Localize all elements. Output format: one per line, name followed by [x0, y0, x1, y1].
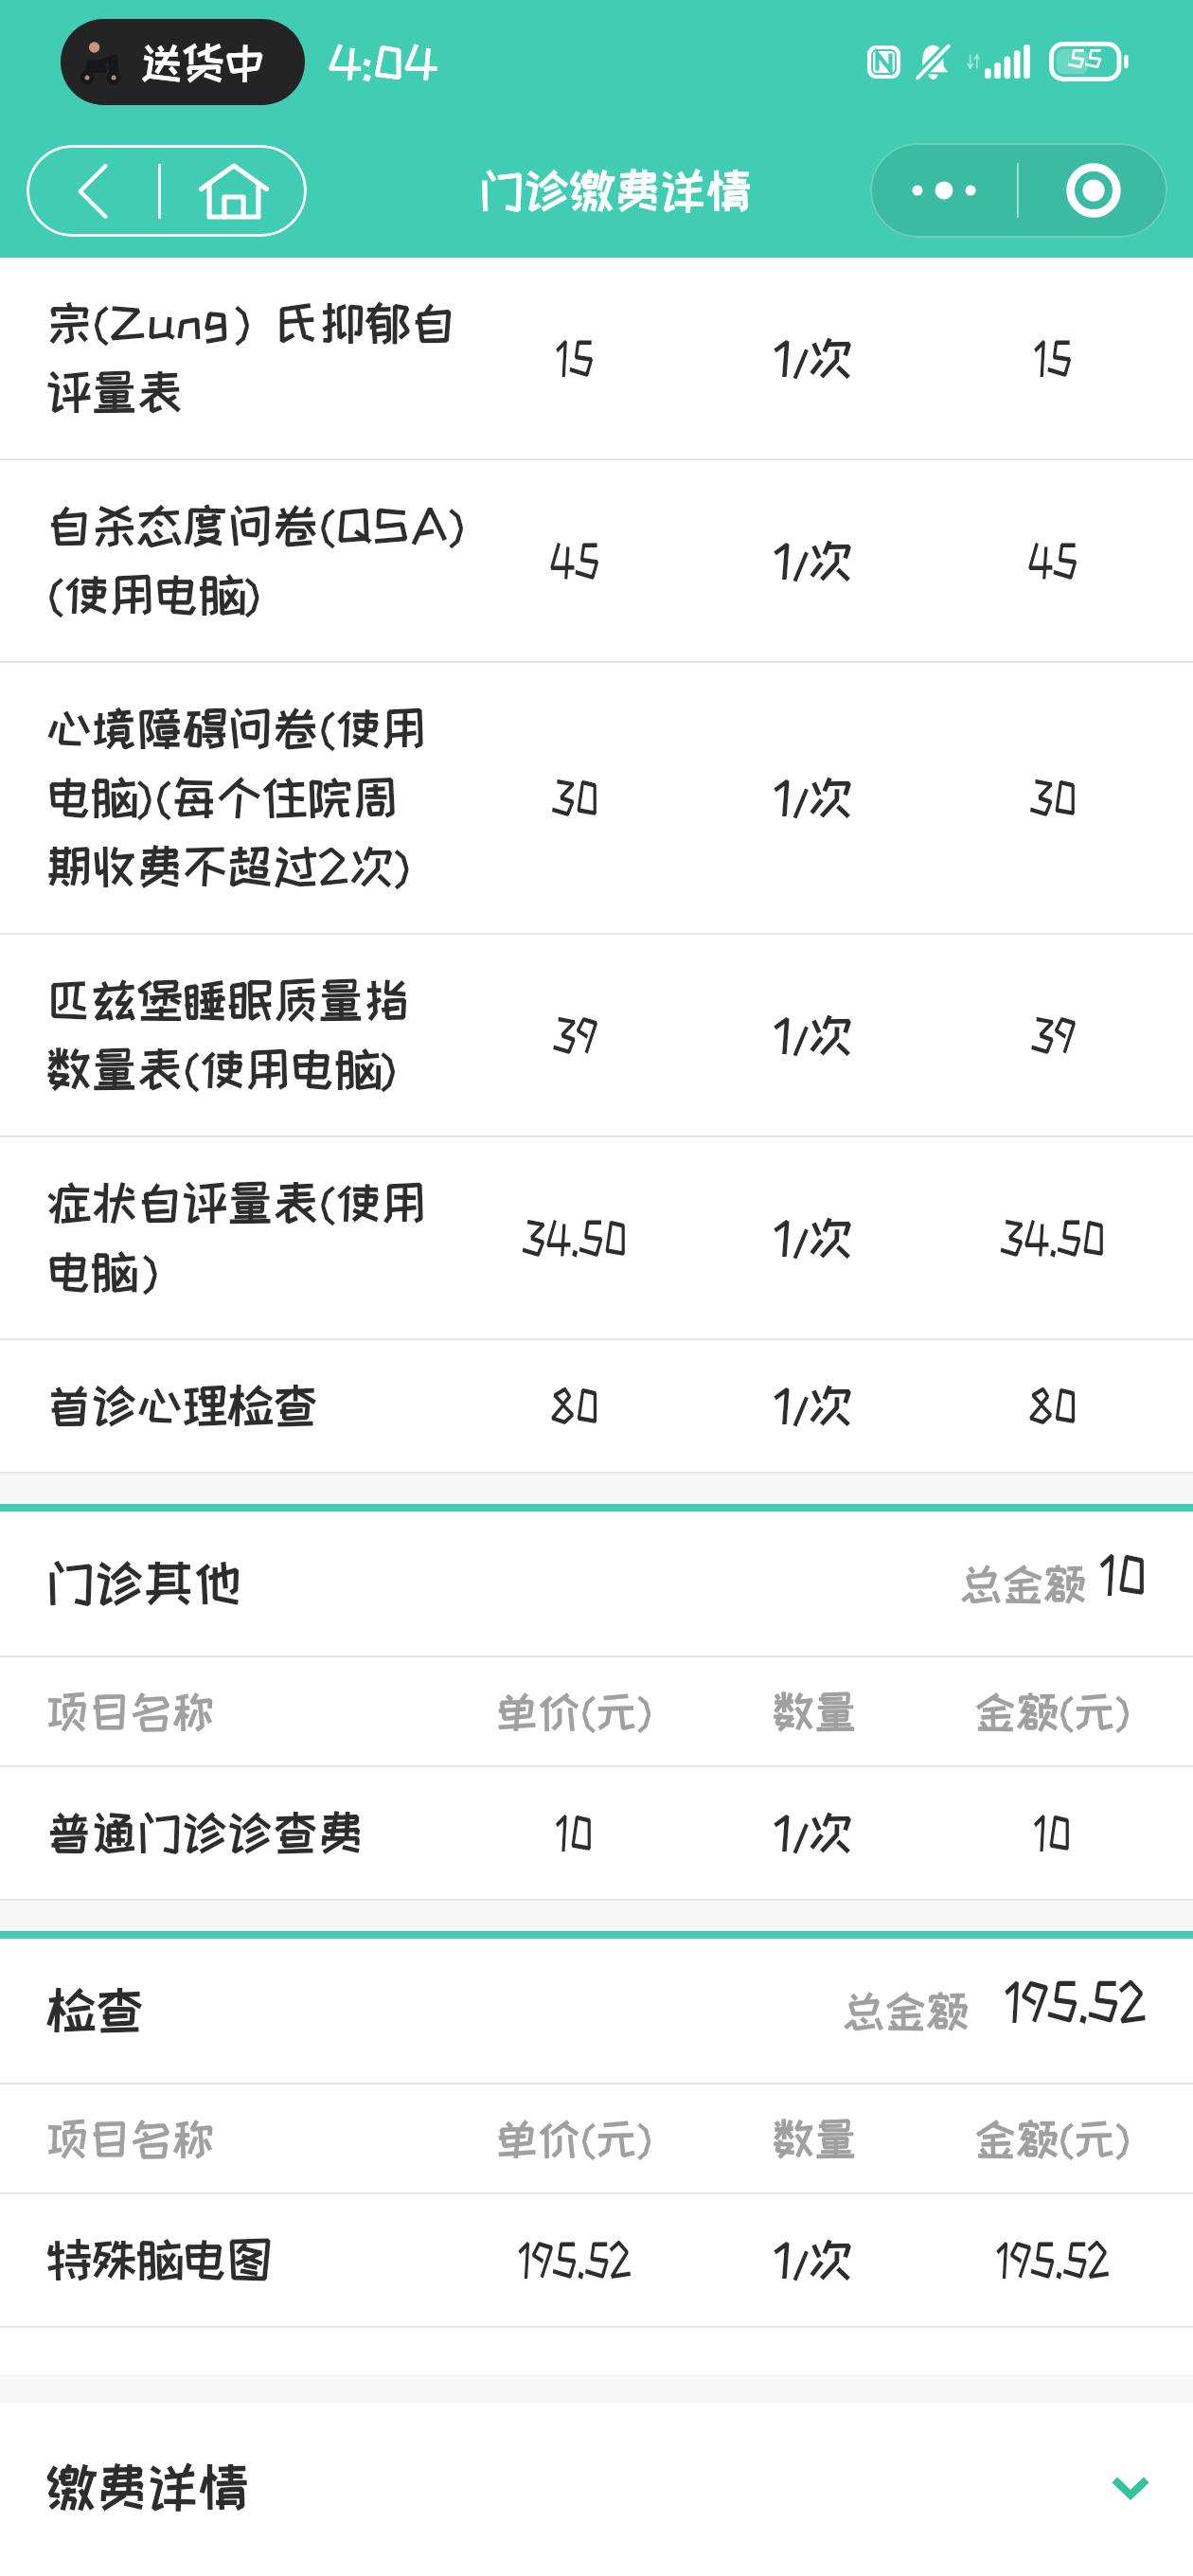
staticText: 30 [1030, 755, 1077, 824]
button[interactable]: 送货中 [61, 19, 305, 105]
staticText: 金额(元) [974, 1672, 1131, 1736]
button[interactable]: 宗(Zung）氏抑郁自 评量表 [0, 258, 1193, 458]
staticText: 1/次 [775, 1363, 854, 1432]
button[interactable]: 症状自评量表(使用 电脑） [0, 1137, 1193, 1338]
staticText: 总金额 [843, 1971, 969, 2035]
staticText: 1/次 [775, 1195, 854, 1264]
button[interactable]: 检查 [0, 1939, 1193, 2083]
staticText: 1/次 [775, 518, 854, 587]
staticText: 195.52 [519, 2217, 631, 2286]
staticText: 34.50 [1000, 1195, 1105, 1264]
button[interactable]: 首诊心理检查 [0, 1340, 1193, 1472]
staticText: 195.52 [1006, 1974, 1147, 2029]
button[interactable]: 心境障碍问卷(使用 电脑)(每个住院周 期收费不超过2次) [0, 663, 1193, 933]
staticText: 10 [1035, 1790, 1071, 1859]
staticText: 金额(元) [974, 2099, 1131, 2163]
staticText: 单价(元) [496, 1672, 653, 1736]
staticText: 10 [556, 1790, 593, 1859]
button[interactable]: Back [27, 145, 158, 237]
staticText: 39 [1031, 993, 1075, 1062]
staticText: 项目名称 [46, 1672, 214, 1736]
staticText: 宗(Zung）氏抑郁自 评量表 [46, 280, 456, 419]
staticText: 55 [1068, 45, 1102, 70]
staticText: 检查 [46, 1963, 145, 2039]
button[interactable]: 特殊脑电图 [0, 2194, 1193, 2326]
staticText: 匹兹堡睡眠质量指 数量表(使用电脑) [46, 957, 409, 1096]
button[interactable]: 自杀态度问卷(QSA) (使用电脑) [0, 460, 1193, 661]
staticText: 15 [1035, 315, 1072, 385]
staticText: 1/次 [775, 755, 854, 824]
staticText: 数量 [773, 1672, 857, 1736]
staticText: 心境障碍问卷(使用 电脑)(每个住院周 期收费不超过2次) [46, 686, 426, 893]
staticText: 门诊其他 [46, 1536, 242, 1612]
button[interactable]: 普通门诊诊查费 [0, 1767, 1193, 1899]
staticText: 1/次 [775, 1790, 854, 1859]
staticText: 45 [550, 518, 600, 587]
staticText: 1/次 [775, 315, 854, 385]
staticText: 总金额 [960, 1544, 1086, 1608]
staticText: 症状自评量表(使用 电脑） [46, 1160, 426, 1298]
staticText: 送货中 [140, 23, 266, 87]
staticText: 数量 [773, 2099, 857, 2163]
button[interactable]: Home [161, 145, 307, 237]
staticText: 30 [552, 755, 599, 824]
button[interactable]: Close mini program [1019, 143, 1167, 238]
button[interactable]: More options [870, 143, 1017, 238]
staticText: 缴费详情 [46, 2439, 249, 2516]
button[interactable]: 门诊其他 [0, 1512, 1193, 1655]
staticText: 门诊缴费详情 [479, 147, 752, 217]
staticText: 15 [556, 315, 594, 385]
staticText: 80 [550, 1363, 599, 1432]
staticText: 特殊脑电图 [46, 2217, 274, 2286]
button[interactable]: 缴费详情 [0, 2403, 1193, 2571]
staticText: 单价(元) [496, 2099, 653, 2163]
staticText: 34.50 [522, 1195, 627, 1264]
staticText: 1/次 [775, 993, 854, 1062]
button[interactable]: 匹兹堡睡眠质量指 数量表(使用电脑) [0, 935, 1193, 1136]
staticText: 45 [1028, 518, 1078, 587]
staticText: 1/次 [775, 2217, 854, 2286]
staticText: 10 [1101, 1547, 1147, 1601]
staticText: 80 [1028, 1363, 1077, 1432]
staticText: 首诊心理检查 [46, 1363, 319, 1432]
staticText: 自杀态度问卷(QSA) (使用电脑) [46, 483, 467, 621]
staticText: 195.52 [997, 2217, 1110, 2286]
staticText: 4:04 [328, 21, 438, 88]
staticText: 项目名称 [46, 2099, 214, 2163]
staticText: 普通门诊诊查费 [46, 1790, 364, 1859]
staticText: 39 [553, 993, 597, 1062]
